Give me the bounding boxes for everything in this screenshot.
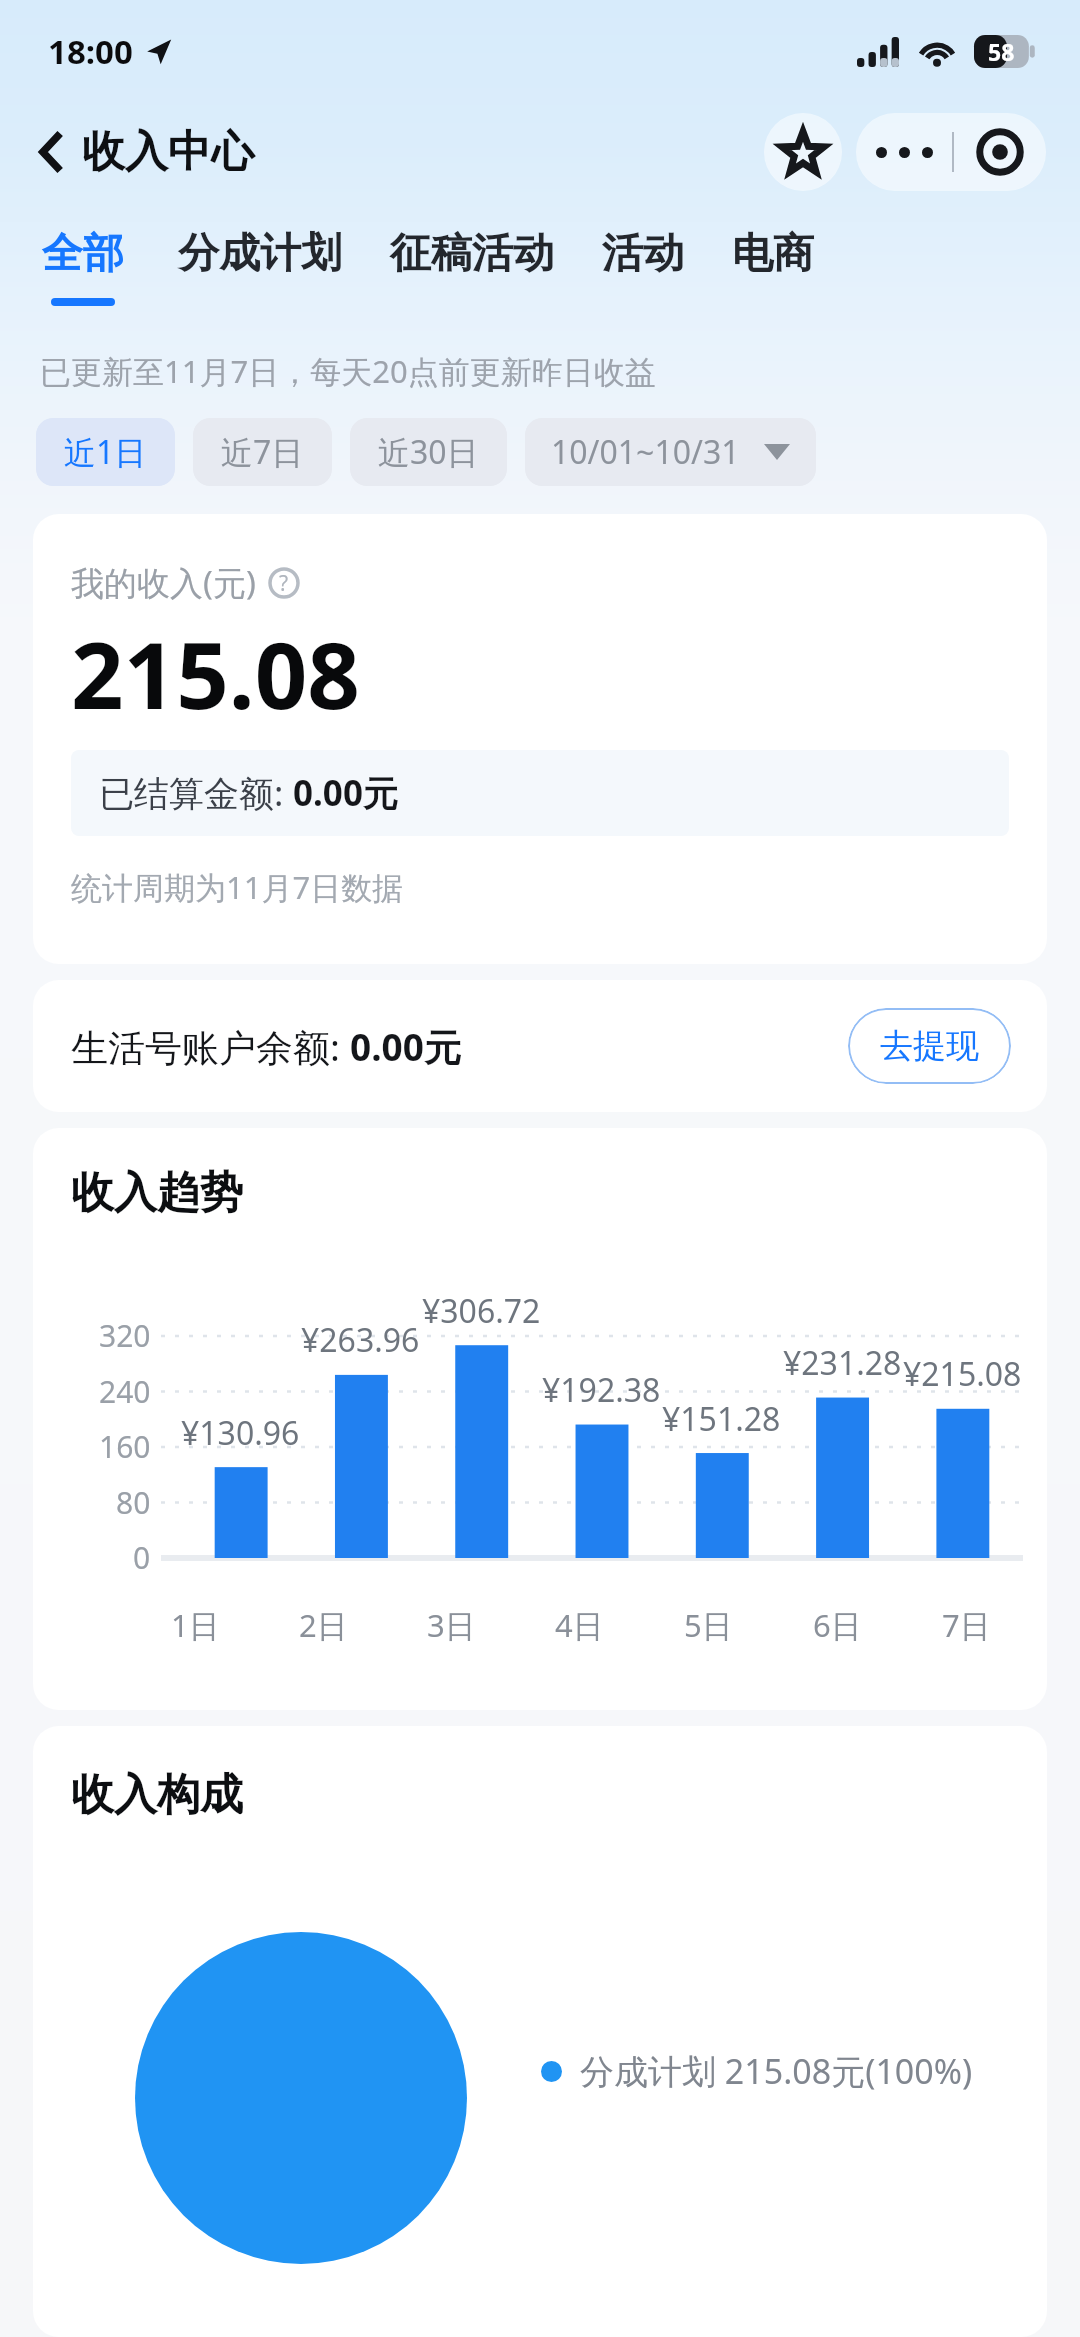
staticText: 生活号账户余额: [71,1021,350,1072]
staticText: 近1日 [64,430,147,474]
staticText: 5日 [684,1604,733,1646]
staticText: 统计周期为11月7日数据 [71,866,404,908]
staticText: 215.08 [71,611,360,736]
button[interactable]: 近30日 [350,418,507,486]
button[interactable]: 10/01~10/31 [525,418,816,486]
staticText: ¥215.08 [903,1352,1022,1396]
staticText: 收入趋势 [71,1166,243,1220]
staticText: 近30日 [378,430,479,474]
staticText: 58 [988,36,1015,67]
staticText: 240 [99,1371,151,1412]
staticText: 全部 [42,228,124,280]
button[interactable]: 电商 [708,202,838,298]
button[interactable]: 去提现 [848,1008,1011,1084]
staticText: 分成计划 [178,228,342,280]
staticText: ¥130.96 [181,1411,300,1455]
staticText: 80 [116,1482,151,1523]
button[interactable]: 收入中心 [30,117,264,187]
button[interactable]: 活动 [578,202,708,298]
button[interactable]: Favorite [764,113,842,191]
staticText: 近7日 [221,430,304,474]
staticText: 收入构成 [71,1768,243,1822]
button[interactable]: 全部 [36,202,130,306]
staticText: 0 [133,1537,151,1578]
staticText: 收入中心 [82,125,254,179]
staticText: 320 [99,1315,151,1356]
button[interactable]: More options [856,113,952,191]
staticText: 已结算金额: [99,769,293,817]
button[interactable]: 近1日 [36,418,175,486]
staticText: ? [279,569,289,598]
button[interactable]: Close [954,113,1046,191]
staticText: 6日 [813,1604,862,1646]
staticText: 4日 [555,1604,604,1646]
staticText: 18:00 [48,29,133,74]
button[interactable]: 分成计划 [154,202,366,298]
staticText: 已更新至11月7日，每天20点前更新昨日收益 [40,350,656,392]
staticText: 0.00元 [350,1021,461,1072]
staticText: ¥306.72 [422,1289,541,1333]
button[interactable]: 近7日 [193,418,332,486]
staticText: 分成计划 215.08元(100%) [580,2048,973,2094]
staticText: 10/01~10/31 [551,430,740,474]
staticText: 160 [99,1426,151,1467]
staticText: 活动 [602,228,684,280]
staticText: 1日 [171,1604,220,1646]
staticText: 去提现 [880,1025,979,1067]
staticText: ¥151.28 [662,1397,781,1441]
button[interactable]: 征稿活动 [366,202,578,298]
staticText: ¥231.28 [783,1341,902,1385]
staticText: 0.00元 [293,769,398,817]
button[interactable]: Help [268,567,300,599]
staticText: 7日 [942,1604,991,1646]
staticText: 我的收入(元) [71,560,256,605]
staticText: 电商 [732,228,814,280]
staticText: ¥192.38 [542,1368,661,1412]
staticText: 3日 [427,1604,476,1646]
staticText: 2日 [299,1604,348,1646]
staticText: 征稿活动 [390,228,554,280]
staticText: ¥263.96 [301,1318,420,1362]
